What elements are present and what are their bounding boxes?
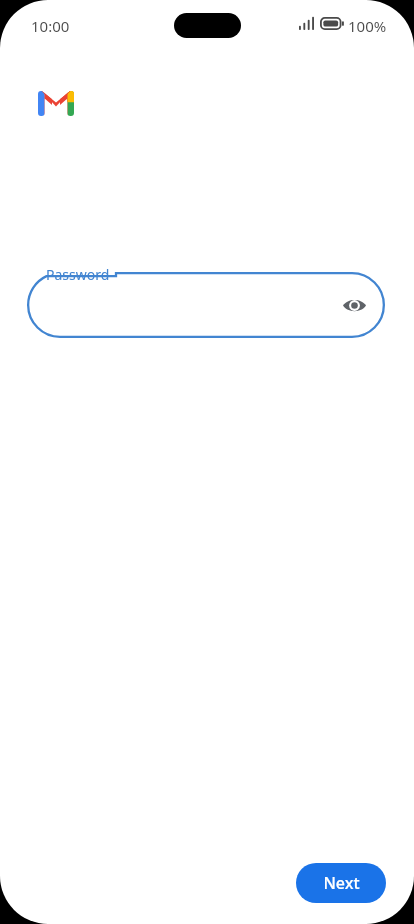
staticText: Password	[46, 265, 110, 284]
button[interactable]: Show password	[332, 283, 376, 327]
staticText: 100%	[348, 16, 387, 36]
button[interactable]: Show password	[27, 272, 385, 338]
staticText: 10:00	[31, 16, 70, 36]
staticText: Next	[323, 872, 360, 894]
button[interactable]: Next	[296, 863, 386, 903]
